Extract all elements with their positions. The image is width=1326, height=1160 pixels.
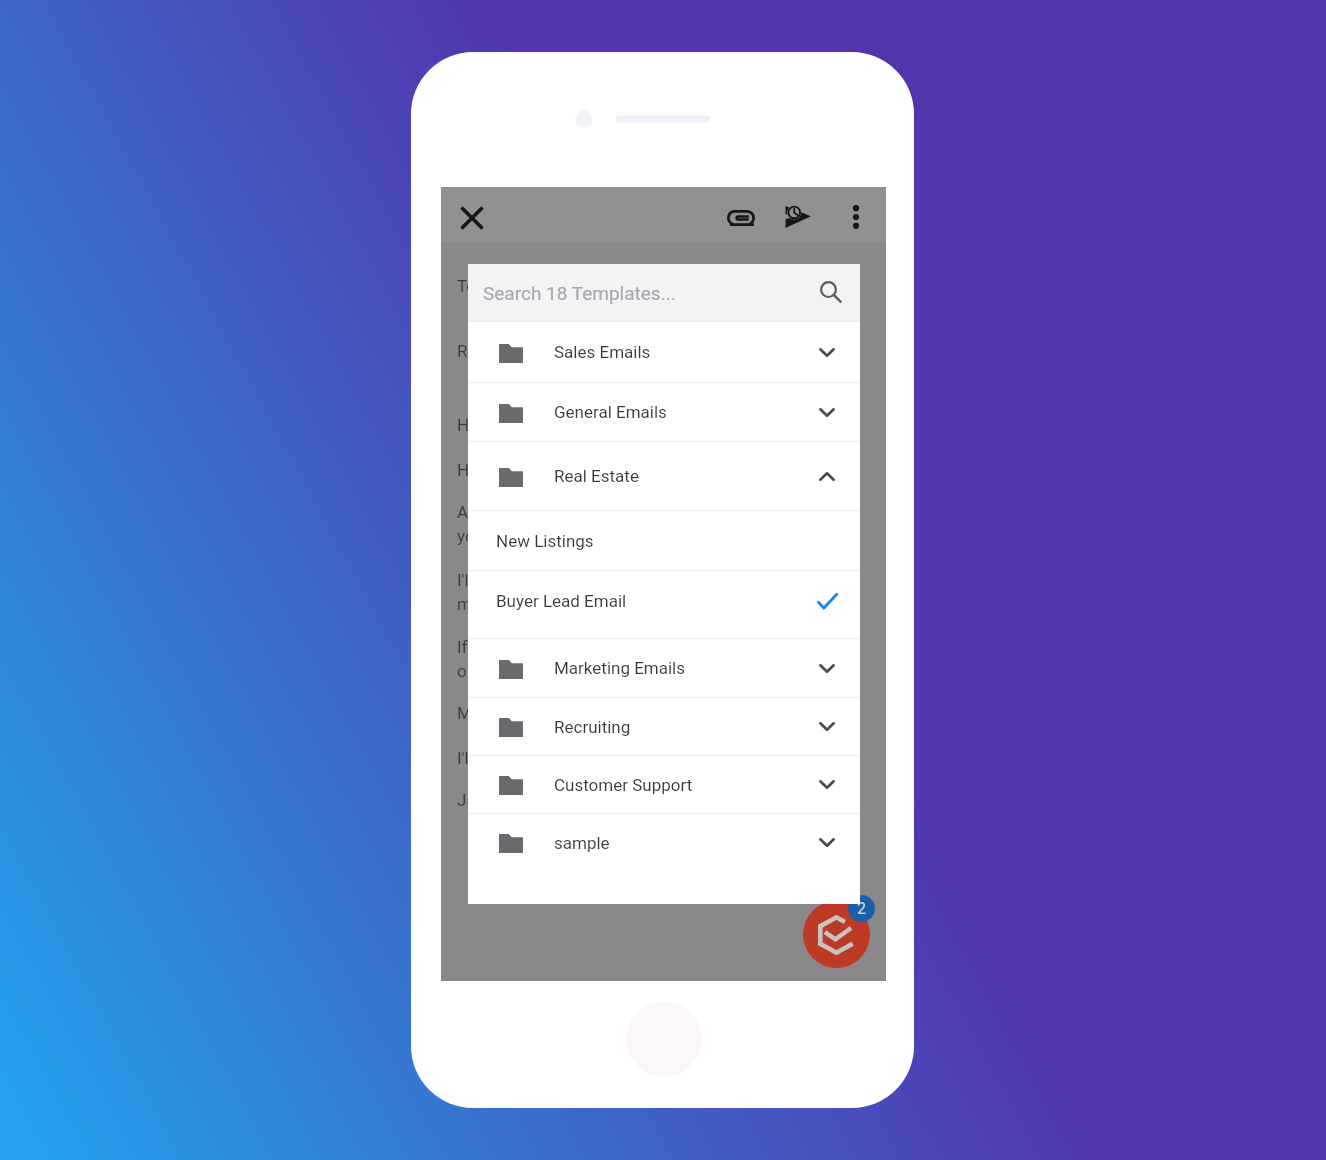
staticText: Hello and thanks for reaching out about … (457, 460, 838, 480)
staticText: 2 (857, 899, 866, 918)
staticText: If you have any questions about financin… (457, 637, 814, 657)
button[interactable]: Close (451, 197, 493, 239)
button[interactable]: Sales Emails (468, 322, 860, 382)
staticText: General Emails (554, 402, 667, 422)
button[interactable]: Send later (775, 196, 817, 238)
button[interactable]: General Emails (468, 383, 860, 441)
staticText: Jane (457, 790, 495, 810)
button[interactable]: Gmelius (803, 901, 870, 968)
staticText: your new home search in this neighbourho… (457, 526, 801, 546)
button[interactable]: Real Estate (468, 442, 860, 510)
button[interactable]: Search 18 Templates... (468, 264, 860, 321)
staticText: To: buyer.lead@example.com (457, 276, 679, 296)
staticText: sample (554, 833, 610, 853)
button[interactable]: sample (468, 814, 860, 871)
staticText: Many thanks, (457, 703, 558, 723)
staticText: Search 18 Templates... (483, 282, 676, 304)
button[interactable]: Buyer Lead Email (468, 571, 860, 638)
staticText: I'll follow up again soon. (457, 748, 639, 768)
button[interactable]: Customer Support (468, 756, 860, 813)
staticText: Customer Support (554, 775, 693, 795)
button[interactable]: Marketing Emails (468, 639, 860, 697)
button[interactable]: More options (835, 196, 877, 238)
button[interactable]: Recruiting (468, 698, 860, 755)
staticText: Sales Emails (554, 342, 651, 362)
staticText: Buyer Lead Email (496, 591, 627, 611)
button[interactable]: New Listings (468, 511, 860, 570)
staticText: Real Estate (554, 466, 639, 486)
staticText: Marketing Emails (554, 658, 686, 678)
staticText: As requested, here is some more informat… (457, 502, 845, 522)
staticText: Hi there, (457, 415, 520, 435)
staticText: Recruiting (554, 717, 631, 737)
staticText: Real estate enquiry (457, 341, 602, 361)
staticText: me know which days work best for you thi… (457, 594, 830, 614)
staticText: New Listings (496, 531, 594, 551)
staticText: offer a few recommendations for you. (457, 661, 742, 681)
button[interactable]: Attach file (720, 196, 762, 238)
staticText: I'll be happy to set up a tour at your c… (457, 570, 852, 590)
